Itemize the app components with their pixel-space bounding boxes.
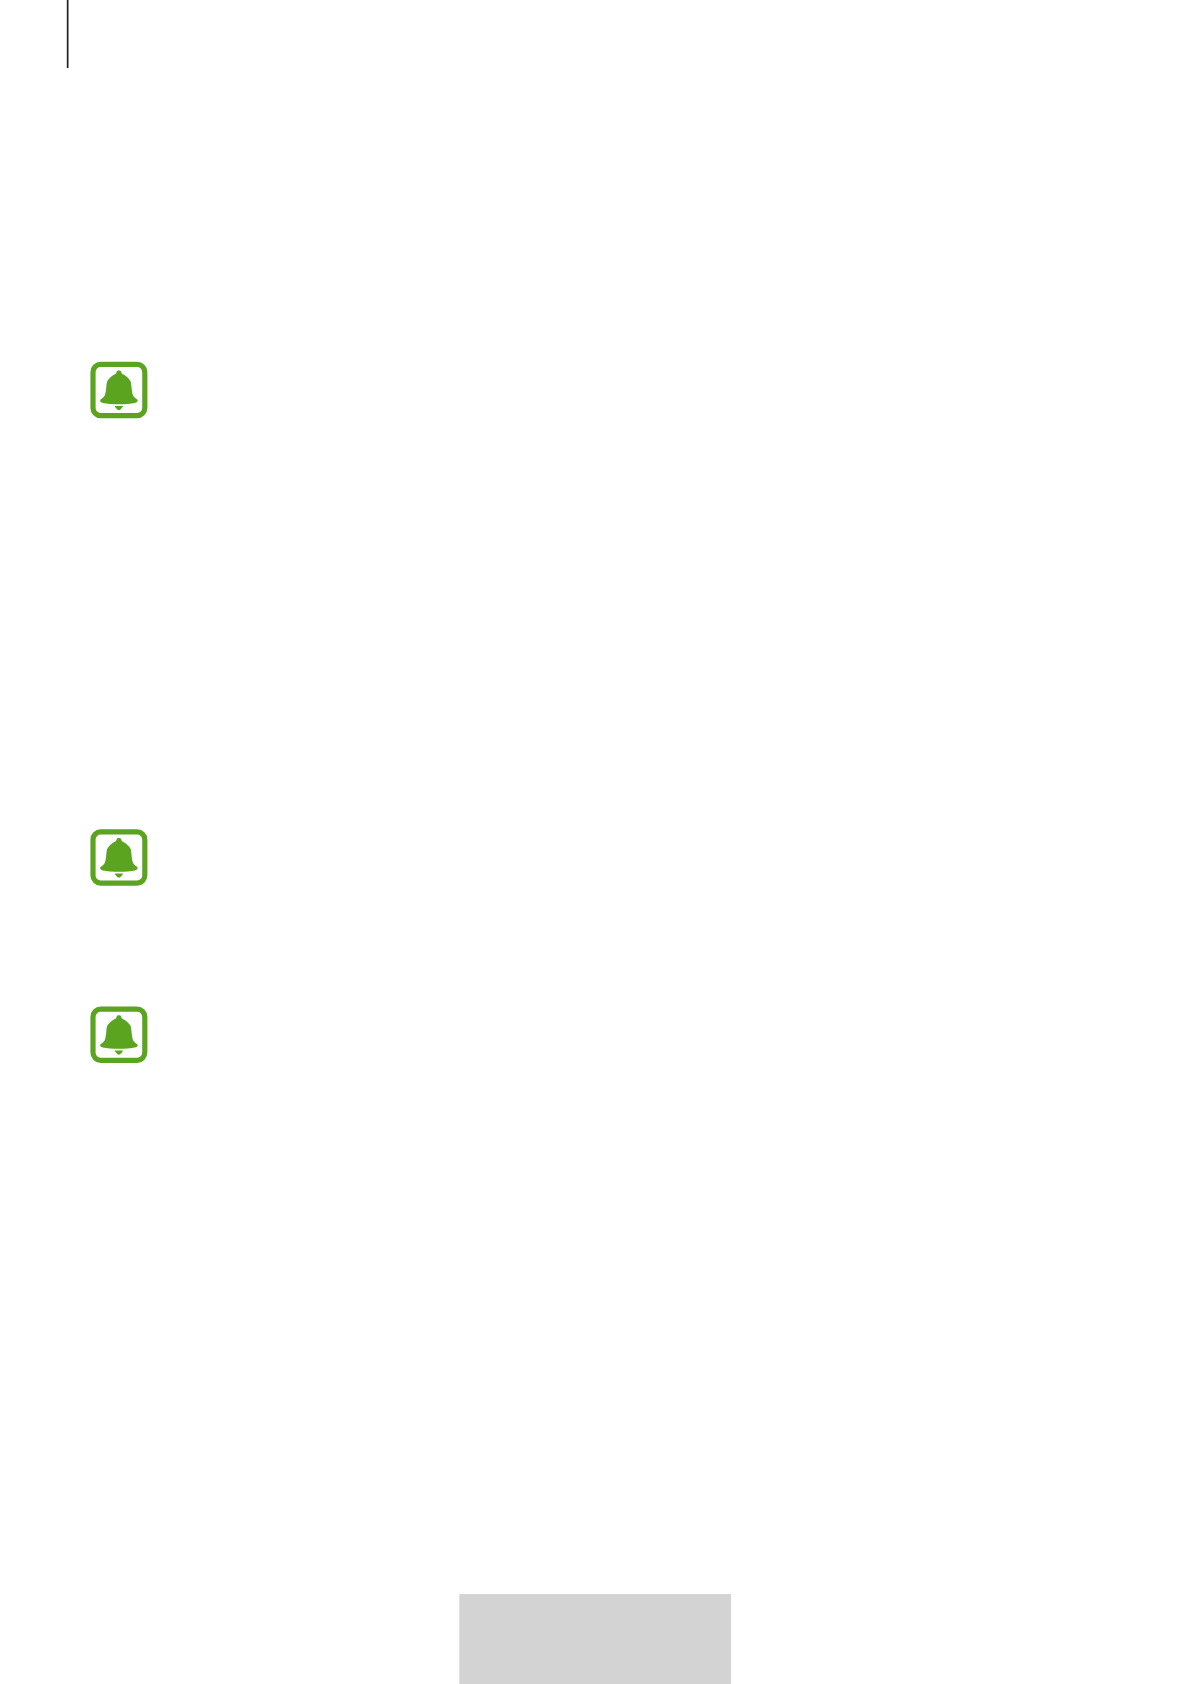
button[interactable]: Notice [90,828,150,888]
button[interactable]: Illustration [458,1593,734,1684]
button[interactable]: Notice [90,360,150,420]
button[interactable]: Notice [90,1005,150,1065]
